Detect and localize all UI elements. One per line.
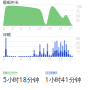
staticText: 1小时41分钟 [45, 75, 81, 84]
staticText: 21 [69, 27, 73, 31]
staticText: 12 [37, 27, 41, 31]
staticText: 18 [58, 27, 62, 31]
staticText: 30 [76, 45, 80, 50]
staticText: 25 [76, 18, 80, 23]
staticText: 睡眠总时长 [3, 71, 18, 75]
staticText: 15 [48, 27, 52, 31]
staticText: 睡眠时长 [3, 0, 19, 5]
staticText: 45 [76, 41, 80, 45]
staticText: 5小时18分钟 [3, 75, 39, 84]
staticText: 6 [20, 27, 22, 31]
staticText: 100 [76, 5, 82, 9]
staticText: 3 [12, 27, 14, 31]
staticText: 6 [20, 57, 22, 61]
staticText: 15 [48, 57, 52, 61]
staticText: 0 [3, 27, 5, 31]
staticText: 21 [69, 57, 73, 61]
staticText: 0 [3, 57, 5, 61]
staticText: 15 [76, 50, 80, 54]
staticText: 18 [58, 57, 62, 61]
staticText: 深睡 [3, 32, 11, 37]
staticText: 9 [29, 27, 31, 31]
staticText: 9 [29, 57, 31, 61]
staticText: 12 [37, 57, 41, 61]
staticText: 50 [76, 14, 80, 18]
staticText: 75 [76, 9, 80, 14]
staticText: 3 [12, 57, 14, 61]
staticText: 深度睡眠 [45, 71, 57, 75]
staticText: 60 [76, 37, 80, 41]
